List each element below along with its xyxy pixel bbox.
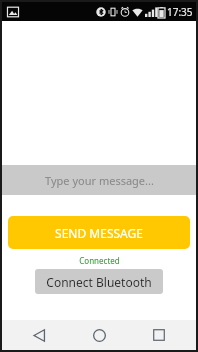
button[interactable]: Back <box>16 320 62 350</box>
staticText: SEND MESSAGE <box>55 225 143 241</box>
button[interactable]: Recent apps <box>136 320 182 350</box>
button[interactable]: Type your message... <box>2 165 196 195</box>
button[interactable]: Home <box>76 320 122 350</box>
staticText: Connected <box>79 255 120 266</box>
button[interactable]: Connect Bluetooth <box>35 269 163 294</box>
staticText: 17:35 <box>167 5 193 19</box>
staticText: Connect Bluetooth <box>46 274 152 290</box>
staticText: Type your message... <box>45 173 154 188</box>
button[interactable]: SEND MESSAGE <box>8 216 190 249</box>
